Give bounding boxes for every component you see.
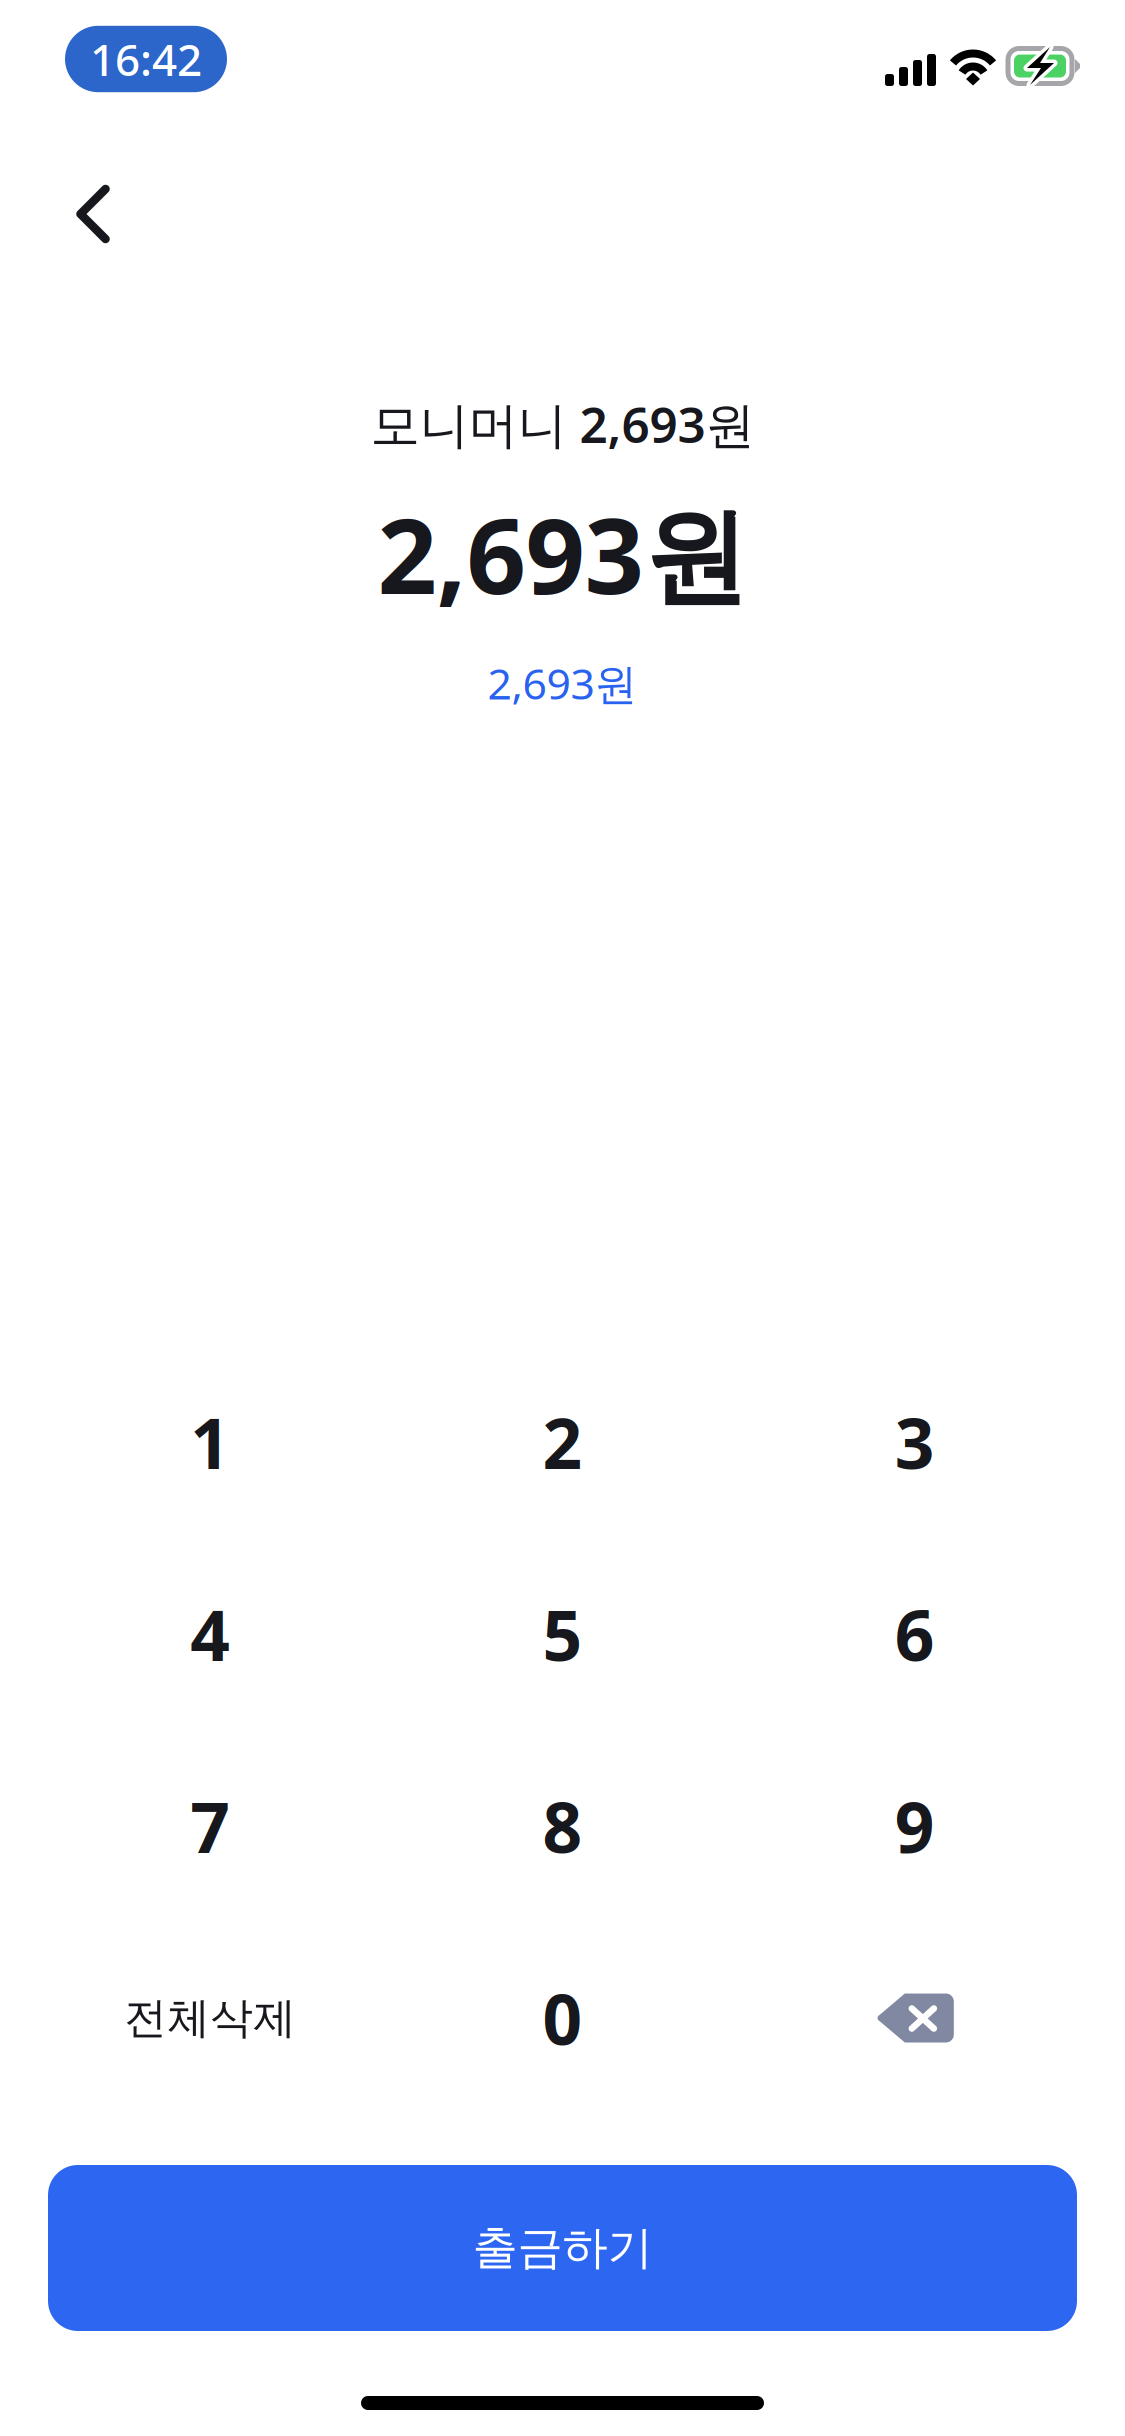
staticText: 1 (190, 1396, 230, 1488)
button[interactable]: 4 (34, 1538, 386, 1730)
button[interactable]: Back (41, 162, 145, 266)
staticText: 9 (895, 1780, 935, 1872)
staticText: 2,693원 (487, 655, 637, 711)
staticText: 8 (542, 1780, 582, 1872)
staticText: 0 (542, 1972, 582, 2064)
button[interactable]: 7 (34, 1730, 386, 1922)
staticText: 3 (895, 1396, 935, 1488)
staticText: 6 (895, 1588, 935, 1680)
button[interactable]: 3 (739, 1346, 1091, 1538)
staticText: 모니머니 2,693원 (370, 391, 754, 456)
staticText: 4 (190, 1588, 230, 1680)
button[interactable]: 9 (739, 1730, 1091, 1922)
button[interactable]: 8 (386, 1730, 739, 1922)
button[interactable]: 전체삭제 (34, 1922, 386, 2114)
staticText: 2,693원 (377, 484, 747, 623)
button[interactable]: 출금하기 (48, 2165, 1077, 2331)
staticText: 7 (190, 1780, 230, 1872)
button[interactable]: 1 (34, 1346, 386, 1538)
staticText: 출금하기 (472, 2220, 652, 2276)
button[interactable]: Delete (739, 1922, 1091, 2114)
button[interactable]: 2,693원 (473, 649, 651, 717)
button[interactable]: 5 (386, 1538, 739, 1730)
button[interactable]: 2 (386, 1346, 739, 1538)
button[interactable]: 6 (739, 1538, 1091, 1730)
staticText: 전체삭제 (124, 1992, 296, 2044)
staticText: 2 (542, 1396, 582, 1488)
staticText: 16:42 (90, 30, 202, 88)
staticText: 5 (542, 1588, 582, 1680)
button[interactable]: 0 (386, 1922, 739, 2114)
